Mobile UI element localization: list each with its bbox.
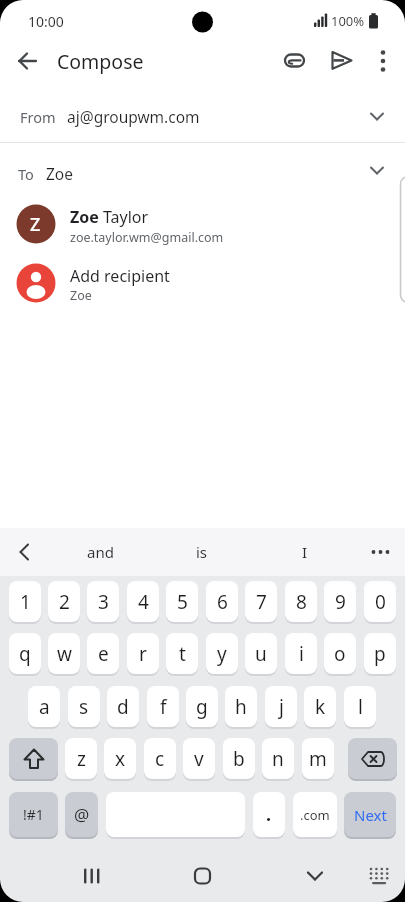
button[interactable]: j [265,686,297,727]
button[interactable]: 5 [166,581,198,622]
button[interactable]: f [147,686,179,727]
button[interactable]: . [253,792,285,837]
staticText: Zoe [46,163,73,184]
button[interactable]: Z [0,197,405,253]
staticText: .com [300,806,330,824]
button[interactable] [172,846,232,902]
staticText: aj@groupwm.com [67,106,200,127]
staticText: Add recipient [70,265,170,287]
staticText: 8 [296,589,307,615]
button[interactable]: r [127,633,159,674]
button[interactable]: 3 [87,581,119,622]
button[interactable]: c [144,738,176,779]
staticText: l [358,694,363,720]
staticText: m [309,746,327,772]
staticText: p [374,641,386,667]
staticText: b [233,746,245,772]
button[interactable]: !#1 [9,792,58,837]
staticText: o [334,641,346,667]
button[interactable]: o [324,633,356,674]
button[interactable]: h [225,686,257,727]
button[interactable]: z [65,738,97,779]
button[interactable] [356,528,405,576]
button[interactable]: 0 [364,581,396,622]
button[interactable]: To [0,143,405,195]
button[interactable]: v [183,738,215,779]
button[interactable]: e [87,633,119,674]
staticText: g [196,694,208,720]
staticText: r [139,641,147,667]
staticText: Compose [57,48,144,75]
button[interactable]: Next [344,792,396,837]
button[interactable]: is [154,528,250,576]
staticText: e [98,641,109,667]
button[interactable]: u [245,633,277,674]
button[interactable] [8,42,46,80]
staticText: c [155,746,165,772]
button[interactable]: 2 [48,581,80,622]
button[interactable] [366,42,404,80]
button[interactable]: 7 [245,581,277,622]
button[interactable]: @ [65,792,98,837]
button[interactable]: a [28,686,60,727]
button[interactable] [60,846,120,902]
button[interactable]: g [186,686,218,727]
staticText: d [117,694,129,720]
staticText: Z [30,212,41,237]
staticText: 2 [59,589,70,615]
staticText: From [20,107,56,127]
staticText: 100% [331,12,365,30]
staticText: f [160,694,167,720]
staticText: @ [74,803,90,826]
staticText: Next [354,805,387,825]
button[interactable] [0,528,48,576]
staticText: To [18,164,34,184]
button[interactable]: w [48,633,80,674]
button[interactable]: and [52,528,148,576]
staticText: 5 [177,589,188,615]
button[interactable]: y [206,633,238,674]
staticText: i [299,641,304,667]
button[interactable]: p [364,633,396,674]
button[interactable] [322,42,360,80]
button[interactable] [276,42,314,80]
button[interactable]: .com [293,792,337,837]
staticText: h [235,694,247,720]
button[interactable]: Add recipient [0,253,405,311]
staticText: q [19,641,31,667]
button[interactable] [348,738,397,779]
button[interactable]: k [304,686,336,727]
button[interactable]: i [285,633,317,674]
staticText: 1 [20,589,31,615]
button[interactable]: s [68,686,100,727]
button[interactable]: m [302,738,334,779]
button[interactable]: I [257,528,353,576]
button[interactable]: 6 [206,581,238,622]
button[interactable]: d [107,686,139,727]
button[interactable]: 9 [324,581,356,622]
button[interactable]: t [166,633,198,674]
staticText: y [217,641,227,667]
button[interactable]: l [344,686,376,727]
staticText: . [266,802,272,827]
button[interactable]: n [262,738,294,779]
button[interactable]: x [104,738,136,779]
button[interactable]: q [9,633,41,674]
staticText: 7 [256,589,267,615]
button[interactable]: 8 [285,581,317,622]
staticText: j [279,694,284,720]
button[interactable]: b [223,738,255,779]
staticText: a [39,694,50,720]
button[interactable]: 1 [9,581,41,622]
button[interactable] [285,846,345,902]
staticText: 4 [138,589,149,615]
button[interactable] [9,738,58,779]
staticText: and [87,542,114,562]
staticText: is [196,542,208,562]
staticText: 0 [375,589,386,615]
button[interactable]: From [0,90,405,142]
button[interactable]: 4 [127,581,159,622]
staticText: 9 [335,589,346,615]
staticText: u [255,641,267,667]
